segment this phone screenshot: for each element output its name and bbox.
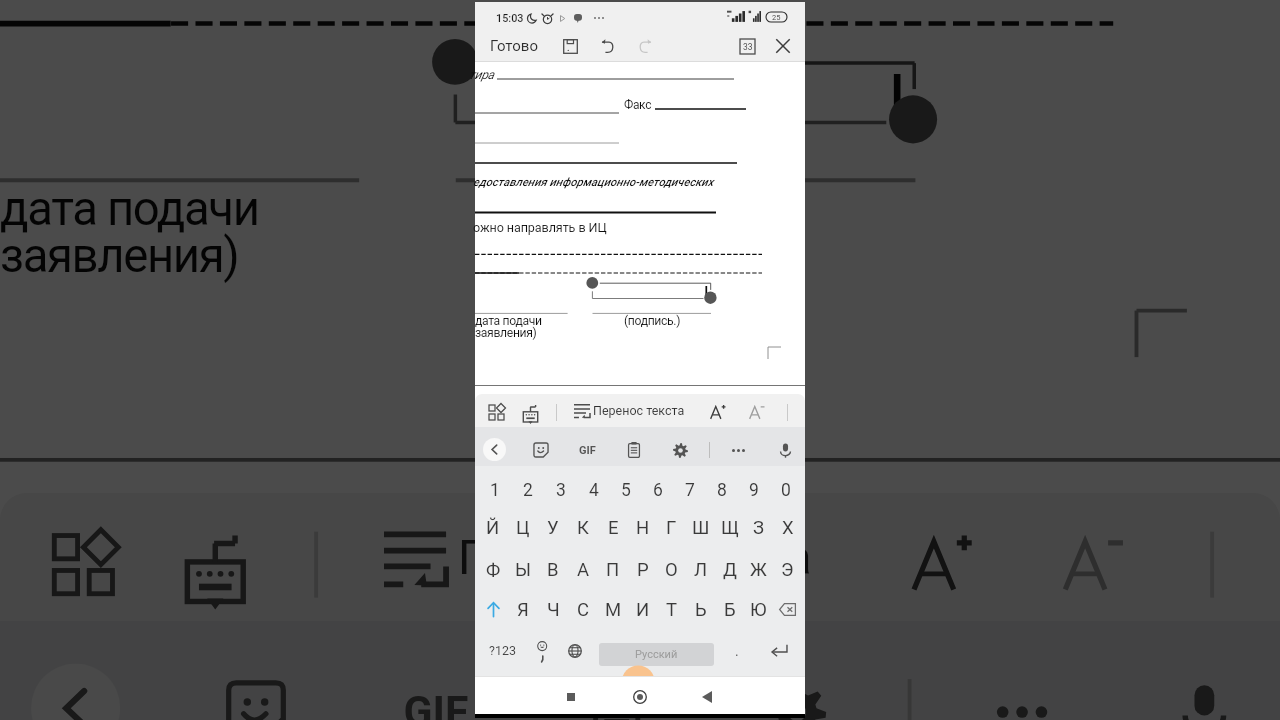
button[interactable]: М [598, 590, 628, 629]
button[interactable]: Е [598, 508, 628, 547]
button[interactable]: И [628, 590, 657, 629]
button[interactable]: Redo [630, 31, 660, 61]
button[interactable]: Русский [599, 643, 714, 666]
button[interactable]: Щ [715, 508, 744, 547]
button[interactable]: Backspace [773, 590, 802, 629]
button[interactable]: 5 [610, 471, 642, 510]
staticText: Е [608, 517, 619, 539]
button[interactable]: Ю [744, 590, 773, 629]
button[interactable]: Decrease font size [743, 398, 771, 426]
button[interactable]: Ь [686, 590, 715, 629]
button[interactable]: Settings [745, 660, 845, 720]
button[interactable]: Save [555, 31, 585, 61]
button[interactable]: Д [715, 550, 744, 589]
button[interactable]: З [744, 508, 773, 547]
button[interactable]: More options [725, 437, 751, 463]
button[interactable]: Ы [508, 550, 538, 589]
button[interactable]: GIF [574, 437, 600, 463]
button[interactable]: 9 [738, 471, 770, 510]
staticText: Х [782, 517, 794, 539]
button[interactable]: 0 [770, 471, 802, 510]
staticText: 4 [589, 480, 599, 501]
staticText: Д [723, 559, 737, 581]
button[interactable]: Keyboard [163, 516, 264, 617]
button[interactable]: Emoji and comma [527, 632, 557, 669]
button[interactable]: А [568, 550, 598, 589]
button[interactable]: 8 [706, 471, 738, 510]
button[interactable]: Э [773, 550, 802, 589]
button[interactable]: Shift [478, 590, 508, 629]
button[interactable]: Л [686, 550, 715, 589]
staticText: Й [486, 517, 500, 539]
button[interactable]: Р [628, 550, 657, 589]
button[interactable]: Ц [508, 508, 538, 547]
button[interactable]: Н [628, 508, 657, 547]
button[interactable]: Page 33 [732, 31, 762, 61]
button[interactable]: К [568, 508, 598, 547]
button[interactable]: Stickers [206, 660, 306, 720]
button[interactable]: 4 [577, 471, 610, 510]
button[interactable]: Я [508, 590, 538, 629]
button[interactable]: Back [31, 663, 120, 720]
button[interactable]: 7 [674, 471, 706, 510]
button[interactable]: Г [657, 508, 686, 547]
button[interactable]: Ф [478, 550, 508, 589]
staticText: Б [724, 599, 736, 621]
button[interactable]: Ж [744, 550, 773, 589]
button[interactable]: Close [767, 30, 799, 62]
staticText: GIF [403, 687, 469, 720]
staticText: Готово [490, 37, 538, 55]
button[interactable]: Widgets [483, 399, 509, 425]
button[interactable]: 1 [478, 471, 511, 510]
button[interactable]: Stickers [528, 437, 554, 463]
button[interactable]: Back [483, 438, 506, 461]
button[interactable]: Б [715, 590, 744, 629]
button[interactable]: 3 [544, 471, 577, 510]
button[interactable]: Voice input [772, 437, 798, 463]
button[interactable]: ?123 [480, 632, 524, 669]
button[interactable]: Т [657, 590, 686, 629]
button[interactable]: Х [773, 508, 802, 547]
button[interactable]: Undo [592, 31, 622, 61]
staticText: 0 [781, 480, 791, 501]
button[interactable]: Ш [686, 508, 715, 547]
button[interactable]: Keyboard [517, 400, 543, 426]
button[interactable]: Enter [762, 632, 796, 669]
button[interactable]: Home [622, 679, 658, 715]
button[interactable]: Widgets [31, 512, 132, 613]
staticText: Я [517, 599, 529, 621]
button[interactable]: Й [478, 508, 508, 547]
button[interactable]: Back [689, 679, 725, 715]
button[interactable]: Clipboard [566, 660, 667, 720]
button[interactable]: Готово [489, 33, 539, 59]
button[interactable]: Перенос текста [572, 401, 687, 420]
staticText: . [735, 643, 739, 659]
button[interactable]: Change language [560, 632, 590, 669]
button[interactable]: С [568, 590, 598, 629]
button[interactable]: Decrease font size [1039, 508, 1148, 617]
button[interactable]: . [722, 632, 752, 669]
button[interactable]: О [657, 550, 686, 589]
button[interactable]: 2 [511, 471, 544, 510]
button[interactable]: У [538, 508, 568, 547]
button[interactable]: Increase font size [704, 398, 732, 426]
button[interactable]: Ч [538, 590, 568, 629]
staticText: Т [666, 599, 678, 621]
button[interactable]: В [538, 550, 568, 589]
button[interactable]: П [598, 550, 628, 589]
button[interactable]: More options [970, 660, 1070, 720]
staticText: Ц [516, 517, 530, 539]
button[interactable]: 6 [642, 471, 674, 510]
button[interactable]: Recents [553, 679, 589, 715]
button[interactable]: Clipboard [621, 437, 647, 463]
staticText: 3 [556, 480, 566, 501]
button[interactable]: Voice input [1152, 660, 1253, 720]
staticText: П [606, 559, 620, 581]
button[interactable]: Increase font size [888, 508, 997, 617]
button[interactable]: Перенос текста [376, 520, 822, 594]
staticText: ?123 [489, 643, 516, 658]
button[interactable]: GIF [384, 660, 485, 720]
staticText: Э [781, 559, 794, 581]
staticText: У [547, 517, 559, 539]
button[interactable]: Settings [667, 437, 693, 463]
